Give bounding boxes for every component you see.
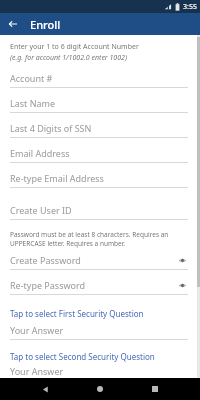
button[interactable]: Your Answer (10, 321, 188, 346)
button[interactable]: Home (90, 379, 110, 399)
staticText: Account # (10, 72, 53, 84)
button[interactable]: Back (35, 379, 55, 399)
staticText: Re-type Email Address (10, 172, 104, 184)
staticText: (e.g. for account 1/1002.0 enter 1002) (10, 53, 127, 63)
staticText: Create Password (10, 254, 81, 266)
staticText: Tap to select Second Security Question (10, 351, 155, 362)
button[interactable]: Email Address (10, 144, 188, 169)
button[interactable]: Create User ID (10, 201, 188, 226)
button[interactable]: Recent apps (145, 379, 165, 399)
button[interactable]: Re-type Email Address (10, 169, 188, 194)
button[interactable]: Back (4, 15, 22, 33)
staticText: Enroll (30, 17, 61, 32)
staticText: Enter your 1 to 6 digit Account Number (10, 42, 139, 52)
staticText: Tap to select First Security Question (10, 308, 144, 319)
button[interactable]: Your Answer (10, 364, 188, 378)
button[interactable]: Create Password (10, 251, 188, 276)
staticText: Your Answer (10, 324, 64, 336)
button[interactable]: Show password (177, 280, 188, 291)
staticText: Email Address (10, 147, 70, 159)
staticText: Last 4 Digits of SSN (10, 122, 92, 134)
staticText: Password must be at least 8 characters. … (10, 230, 169, 239)
staticText: UPPERCASE letter. Requires a number. (10, 239, 126, 248)
button[interactable]: Tap to select First Security Question (10, 306, 188, 321)
button[interactable]: Re-type Password (10, 276, 188, 301)
staticText: Create User ID (10, 204, 72, 216)
button[interactable]: Last 4 Digits of SSN (10, 119, 188, 144)
button[interactable]: Last Name (10, 94, 188, 119)
staticText: 3:55 (183, 2, 197, 12)
button[interactable]: Tap to select Second Security Question (10, 349, 188, 364)
button[interactable]: Account # (10, 69, 188, 94)
staticText: Re-type Password (10, 279, 86, 291)
button[interactable]: Show password (177, 255, 188, 266)
staticText: Your Answer (10, 365, 64, 377)
staticText: Last Name (10, 97, 56, 109)
